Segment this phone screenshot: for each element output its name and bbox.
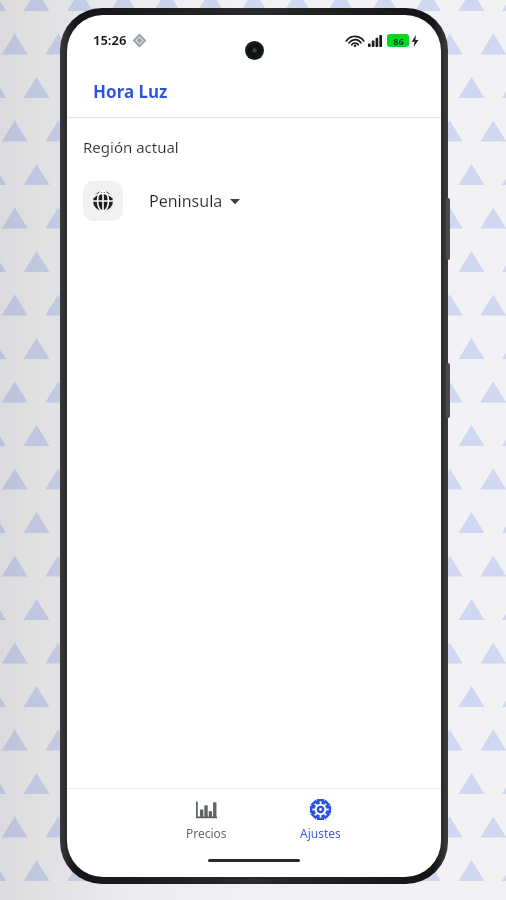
button[interactable]: Región — [67, 179, 441, 223]
staticText: Ajustes — [300, 825, 341, 841]
staticText: Precios — [186, 825, 227, 841]
staticText: 86 — [393, 35, 404, 47]
staticText: 15:26 — [93, 31, 127, 49]
staticText: Hora Luz — [93, 80, 168, 103]
other: Región — [93, 191, 113, 211]
button[interactable]: Precios — [153, 789, 259, 851]
button[interactable]: Ajustes — [267, 789, 373, 851]
staticText: Región actual — [83, 137, 179, 157]
staticText: Peninsula — [149, 190, 223, 212]
